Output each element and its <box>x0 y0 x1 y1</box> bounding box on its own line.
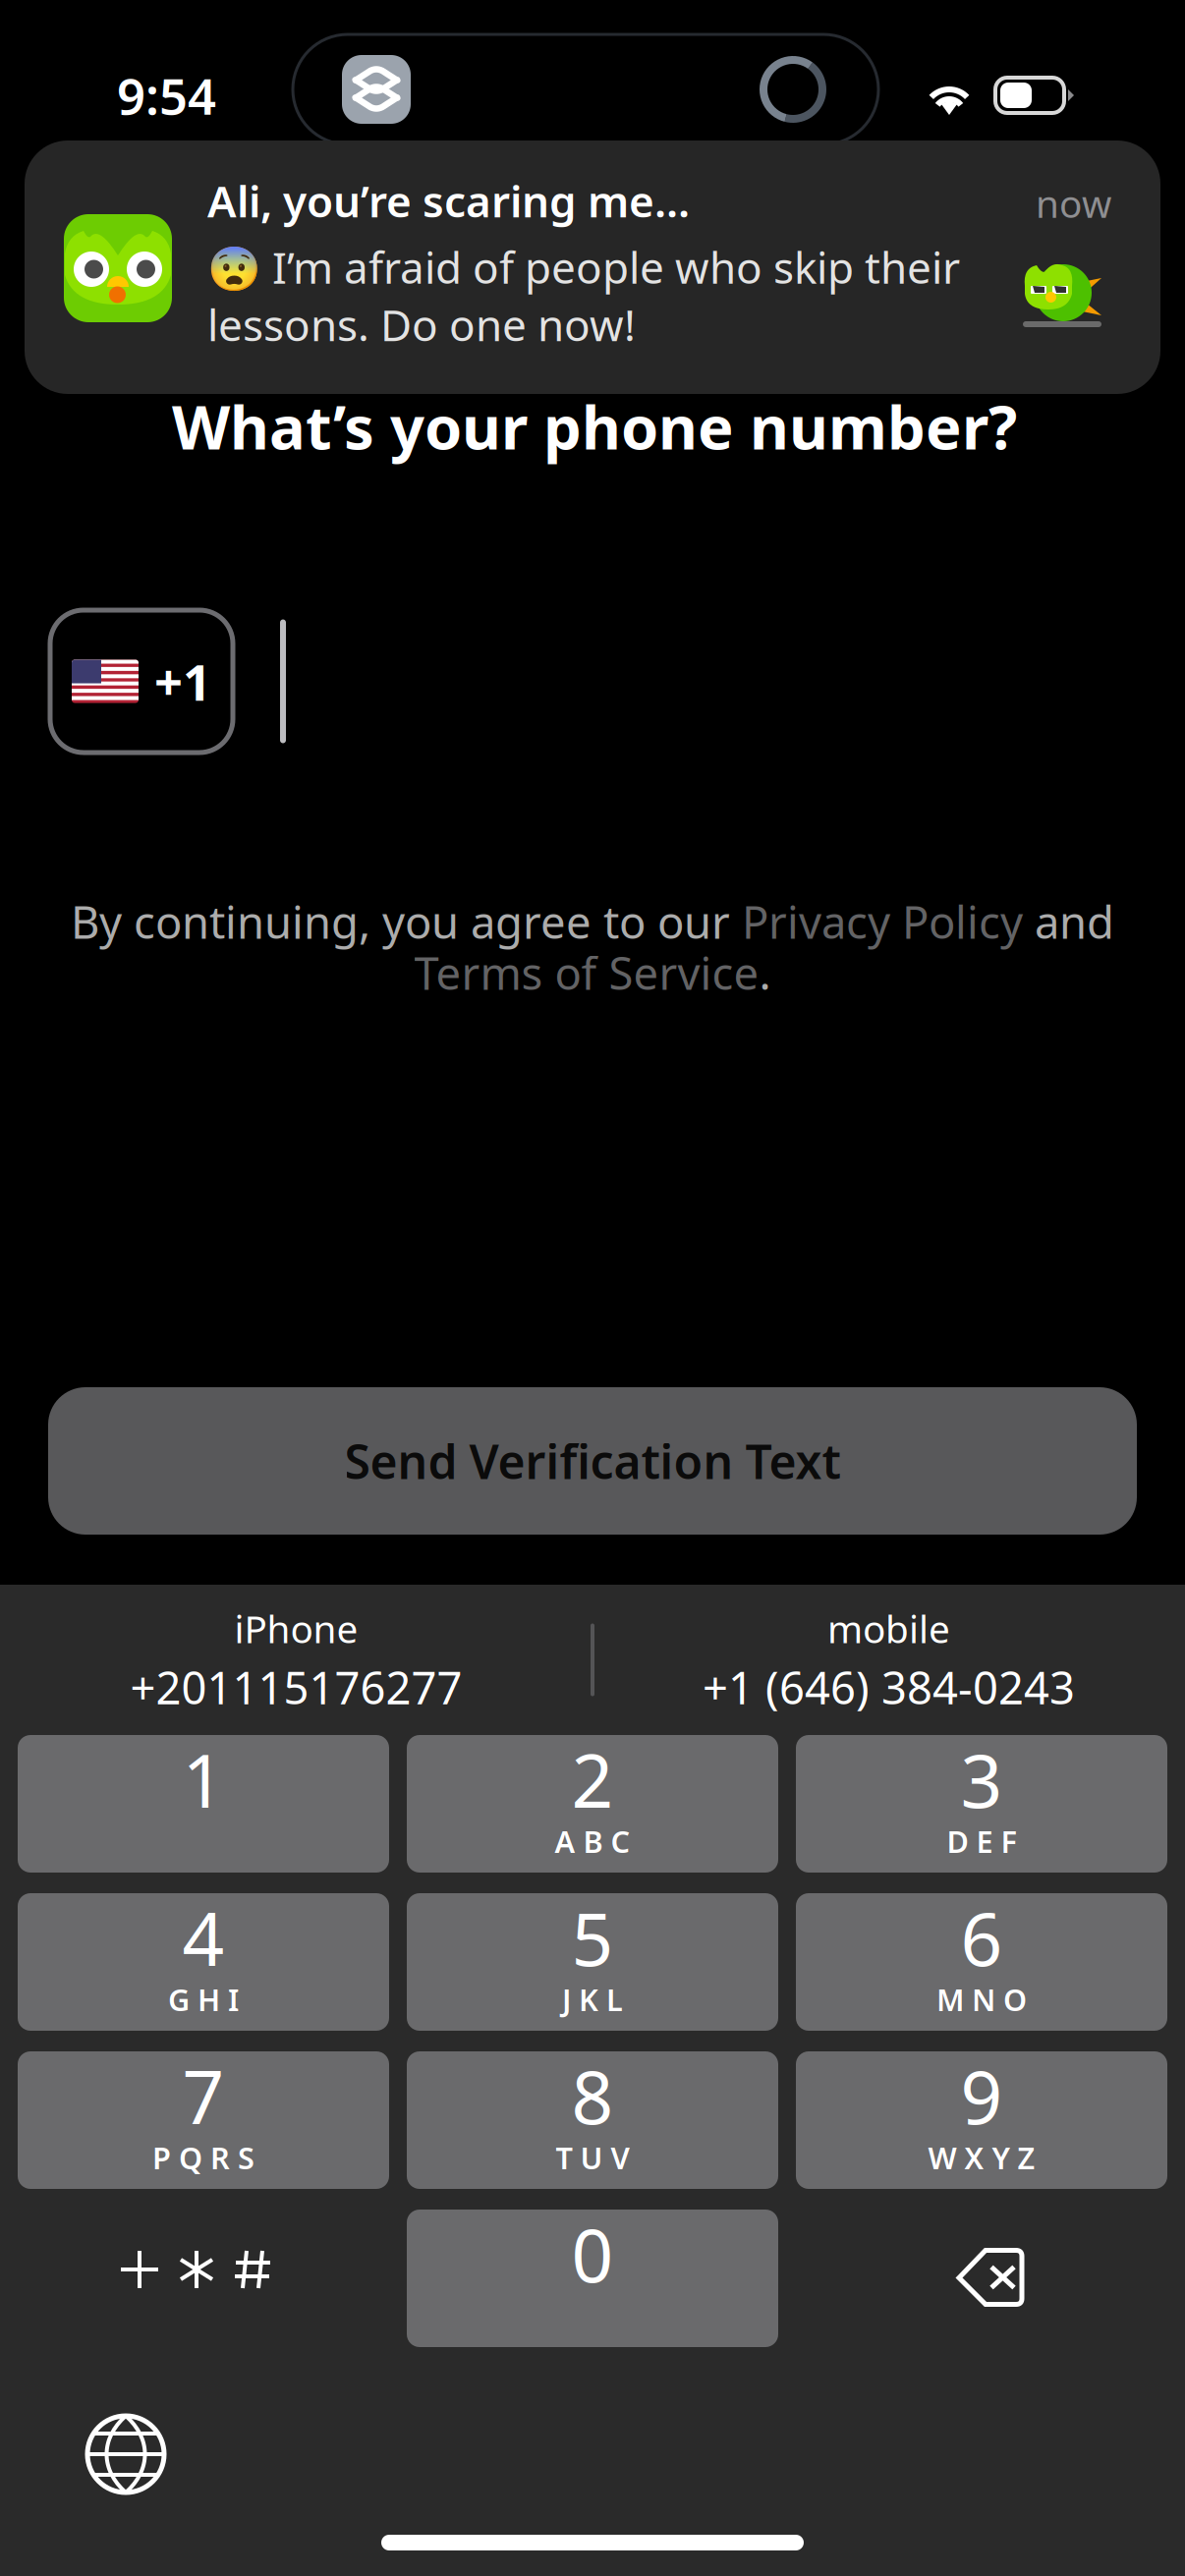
staticText: mobile <box>827 1603 950 1653</box>
staticText: J K L <box>562 1979 623 2019</box>
button[interactable]: Terms of Service <box>414 943 759 1002</box>
staticText: Ali, you’re scaring me... <box>207 172 690 229</box>
staticText: 6 <box>960 1889 1003 1986</box>
staticText: 0 <box>571 2205 614 2302</box>
staticText: 9 <box>960 2047 1003 2144</box>
staticText: What’s your phone number? <box>172 386 1017 466</box>
button[interactable]: 0 <box>407 2210 778 2347</box>
staticText: M N O <box>936 1979 1027 2019</box>
staticText: 😨 I’m afraid of people who skip their le… <box>207 238 960 353</box>
button[interactable]: Privacy Policy <box>742 892 1023 951</box>
button[interactable]: Next keyboard <box>85 2413 167 2495</box>
button[interactable]: Send Verification Text <box>48 1387 1137 1535</box>
button[interactable]: 9 <box>796 2051 1167 2189</box>
staticText: Send Verification Text <box>344 1430 841 1492</box>
staticText: Privacy Policy <box>742 892 1023 951</box>
button[interactable]: +1 <box>50 610 233 753</box>
staticText: now <box>1036 178 1111 228</box>
staticText: A B C <box>555 1821 630 1861</box>
staticText: 1 <box>182 1730 225 1828</box>
button[interactable]: 8 <box>407 2051 778 2189</box>
staticText: 8 <box>571 2047 614 2144</box>
staticText: 9:54 <box>117 62 216 128</box>
staticText: +201115176277 <box>130 1658 462 1717</box>
staticText: 3 <box>960 1730 1003 1828</box>
staticText: D E F <box>947 1821 1016 1861</box>
staticText: 2 <box>571 1730 614 1828</box>
staticText: 5 <box>571 1889 614 1986</box>
button[interactable]: 3 <box>796 1735 1167 1873</box>
button[interactable]: 5 <box>407 1893 778 2031</box>
staticText: . <box>759 943 771 1002</box>
staticText: G H I <box>168 1979 239 2019</box>
button[interactable]: 2 <box>407 1735 778 1873</box>
staticText: W X Y Z <box>928 2137 1035 2177</box>
button[interactable]: Plus, star, pound <box>18 2210 389 2347</box>
staticText: 7 <box>182 2047 225 2144</box>
button[interactable]: Ali, you’re scaring me... <box>25 140 1160 394</box>
staticText: Terms of Service <box>414 943 759 1002</box>
button[interactable]: 1 <box>18 1735 389 1873</box>
button[interactable]: Delete <box>796 2210 1167 2347</box>
staticText: By continuing, you agree to our <box>71 892 742 951</box>
button[interactable]: 7 <box>18 2051 389 2189</box>
button[interactable]: 4 <box>18 1893 389 2031</box>
staticText: and <box>1023 892 1114 951</box>
staticText: +1 <box>154 648 211 714</box>
staticText: P Q R S <box>152 2137 254 2177</box>
staticText: 4 <box>182 1889 225 1986</box>
staticText: iPhone <box>234 1603 358 1653</box>
button[interactable]: 6 <box>796 1893 1167 2031</box>
staticText: +1 (646) 384-0243 <box>703 1658 1075 1717</box>
staticText: T U V <box>556 2137 629 2177</box>
